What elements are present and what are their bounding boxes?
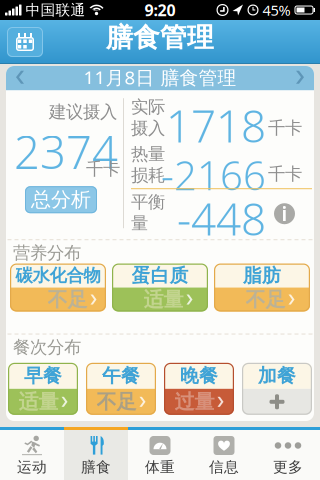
button[interactable]: 碳水化合物 (10, 263, 106, 311)
staticText: 午餐 (102, 364, 140, 387)
button[interactable]: 午餐 (86, 363, 156, 415)
staticText: 营养分布 (13, 242, 81, 263)
button[interactable]: 蛋白质 (112, 263, 208, 311)
staticText: 总分析 (31, 187, 91, 212)
staticText: -448 (177, 189, 266, 248)
button[interactable]: 膳食 (64, 430, 128, 480)
staticText: 千卡 (86, 158, 120, 179)
staticText: -2166 (161, 148, 266, 201)
staticText: 2374 (14, 121, 118, 181)
staticText: 45% (262, 0, 290, 20)
button[interactable]: 说明 (274, 203, 295, 224)
button[interactable]: 体重 (128, 430, 192, 480)
button[interactable]: 脂肪 (214, 263, 310, 311)
staticText: 适量 (143, 287, 183, 312)
staticText: 建议摄入 (49, 101, 117, 122)
staticText: 膳食管理 (106, 21, 214, 54)
staticText: 膳食 (81, 458, 111, 476)
staticText: 过量 (174, 389, 214, 414)
staticText: i (281, 201, 287, 226)
button[interactable]: 日历 (7, 27, 43, 57)
staticText: 热量 损耗 (131, 143, 165, 186)
staticText: 加餐 (258, 364, 296, 387)
staticText: 千卡 (268, 117, 302, 138)
staticText: 不足 (96, 389, 136, 414)
staticText: 信息 (209, 458, 239, 476)
staticText: 中国联通 (25, 1, 85, 19)
button[interactable]: 运动 (0, 430, 64, 480)
staticText: 11月8日 膳食管理 (83, 65, 236, 90)
button[interactable]: 后一天 (296, 65, 314, 90)
button[interactable]: 早餐 (8, 363, 78, 415)
staticText: 千卡 (268, 163, 302, 184)
button[interactable]: 前一天 (6, 65, 24, 90)
button[interactable]: 加餐 (242, 363, 312, 415)
staticText: 适量 (18, 389, 58, 414)
staticText: 实际 摄入 (131, 96, 165, 139)
staticText: 不足 (47, 287, 87, 312)
staticText: 9:20 (144, 0, 175, 21)
staticText: 平衡 量 (131, 191, 165, 234)
button[interactable]: 总分析 (25, 186, 97, 213)
staticText: 体重 (145, 458, 175, 476)
staticText: 运动 (17, 458, 47, 476)
staticText: 蛋白质 (131, 264, 188, 287)
button[interactable]: 晚餐 (164, 363, 234, 415)
staticText: 早餐 (24, 364, 62, 387)
staticText: 脂肪 (243, 264, 281, 287)
button[interactable]: 更多 (256, 430, 320, 480)
staticText: 餐次分布 (13, 336, 81, 358)
staticText: 1718 (166, 96, 266, 155)
staticText: 晚餐 (180, 364, 218, 387)
staticText: 不足 (245, 287, 285, 312)
staticText: 更多 (273, 458, 303, 476)
staticText: 碳水化合物 (15, 265, 100, 286)
button[interactable]: 信息 (192, 430, 256, 480)
